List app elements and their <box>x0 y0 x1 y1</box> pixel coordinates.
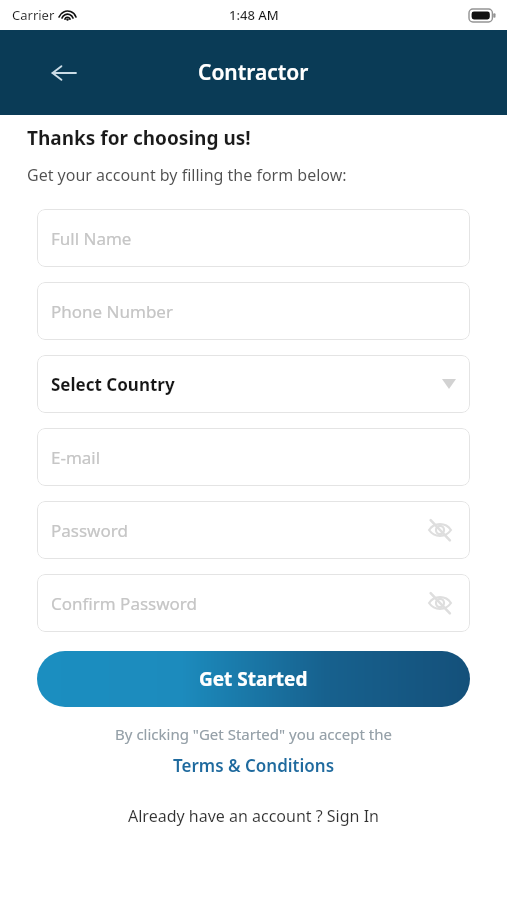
staticText: By clicking "Get Started" you accept the <box>0 724 507 744</box>
staticText: Thanks for choosing us! <box>27 125 251 151</box>
staticText: 1:48 AM <box>229 6 279 24</box>
button[interactable]: E-mail <box>37 428 470 486</box>
staticText: Select Country <box>51 373 175 396</box>
staticText: Get your account by filling the form bel… <box>27 164 347 186</box>
button[interactable]: Back <box>40 49 88 97</box>
button[interactable]: Confirm Password <box>37 574 470 632</box>
staticText: E-mail <box>51 446 101 469</box>
staticText: Get Started <box>199 666 308 692</box>
staticText: Full Name <box>51 227 132 250</box>
button[interactable]: Select Country <box>37 355 470 413</box>
staticText: Carrier <box>12 6 55 24</box>
button[interactable]: Get Started <box>37 651 470 707</box>
staticText: Contractor <box>198 58 309 87</box>
button[interactable]: Already have an account ? Sign In <box>122 802 385 830</box>
staticText: Password <box>51 519 128 542</box>
staticText: Phone Number <box>51 300 173 323</box>
button[interactable]: Password <box>37 501 470 559</box>
button[interactable]: Full Name <box>37 209 470 267</box>
button[interactable]: Phone Number <box>37 282 470 340</box>
staticText: Confirm Password <box>51 592 197 615</box>
button[interactable]: Terms & Conditions <box>167 751 341 780</box>
